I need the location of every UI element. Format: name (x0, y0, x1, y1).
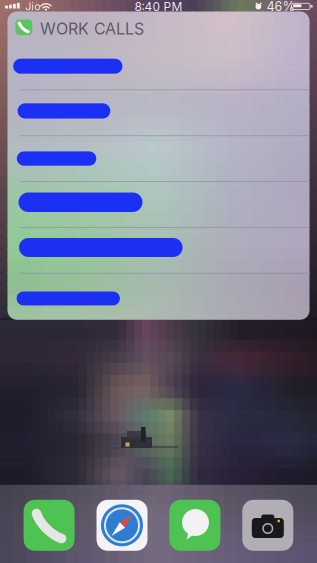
button[interactable]: Messages (0, 0, 317, 563)
staticText: Jio (25, 0, 40, 13)
button[interactable]: Phone (0, 0, 317, 563)
button[interactable]: Work Calls widget (0, 0, 317, 563)
staticText: 46% (266, 0, 294, 14)
button[interactable]: Safari (0, 0, 317, 563)
button[interactable]: Camera (0, 0, 317, 563)
staticText: 8:40 PM (135, 0, 183, 14)
staticText: WORK CALLS (40, 19, 144, 38)
